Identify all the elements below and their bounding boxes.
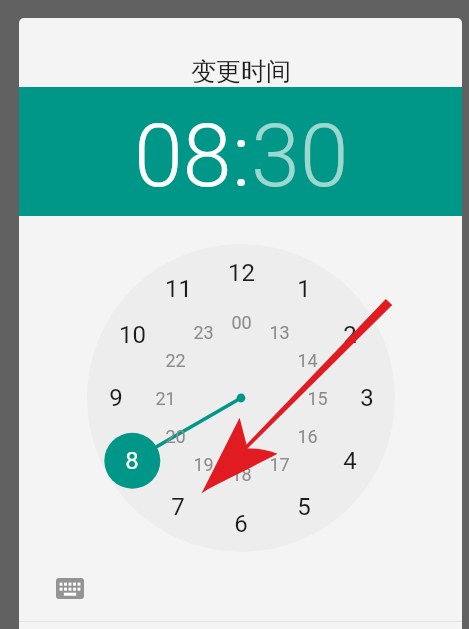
button[interactable]: 08: [134, 104, 232, 207]
staticText: 2: [343, 321, 357, 349]
button[interactable]: 4: [322, 444, 378, 478]
staticText: 1: [297, 275, 311, 303]
button[interactable]: 30: [251, 104, 349, 207]
staticText: 17: [269, 454, 290, 475]
staticText: 19: [193, 454, 214, 475]
staticText: 20: [165, 426, 186, 447]
button[interactable]: 9: [88, 381, 144, 415]
staticText: 12: [228, 259, 255, 287]
button[interactable]: 15: [289, 381, 345, 415]
staticText: 4: [343, 447, 357, 475]
button[interactable]: 7: [150, 490, 206, 524]
staticText: 9: [109, 384, 123, 412]
button[interactable]: 6: [213, 507, 269, 541]
button[interactable]: 11: [150, 272, 206, 306]
button[interactable]: 16: [279, 419, 335, 453]
button[interactable]: 17: [251, 447, 307, 481]
staticText: 21: [155, 388, 176, 409]
staticText: 13: [269, 322, 290, 343]
staticText: 11: [165, 275, 192, 303]
staticText: 23: [193, 322, 214, 343]
button[interactable]: Switch to keyboard input: [49, 572, 91, 604]
staticText: :: [232, 104, 251, 207]
staticText: 8: [125, 447, 139, 475]
button[interactable]: 14: [279, 343, 335, 377]
button[interactable]: 21: [137, 381, 193, 415]
staticText: 22: [165, 350, 186, 371]
staticText: 00: [231, 312, 252, 333]
button[interactable]: 20: [147, 419, 203, 453]
button[interactable]: 1: [276, 272, 332, 306]
staticText: 10: [119, 321, 146, 349]
button[interactable]: 8: [104, 444, 160, 478]
staticText: 15: [307, 388, 328, 409]
staticText: 14: [297, 350, 318, 371]
button[interactable]: 13: [251, 315, 307, 349]
button[interactable]: 23: [175, 315, 231, 349]
staticText: 变更时间: [191, 56, 291, 87]
staticText: 16: [297, 426, 318, 447]
button[interactable]: 5: [276, 490, 332, 524]
button[interactable]: 18: [213, 457, 269, 491]
staticText: 7: [171, 493, 185, 521]
button[interactable]: 19: [175, 447, 231, 481]
staticText: 18: [231, 464, 252, 485]
button[interactable]: 22: [147, 343, 203, 377]
staticText: 6: [234, 510, 248, 538]
button[interactable]: 12: [213, 256, 269, 290]
staticText: 3: [360, 384, 374, 412]
button[interactable]: 2: [322, 318, 378, 352]
staticText: 5: [297, 493, 311, 521]
button[interactable]: 3: [339, 381, 395, 415]
button[interactable]: 00: [213, 305, 269, 339]
button[interactable]: 10: [104, 318, 160, 352]
